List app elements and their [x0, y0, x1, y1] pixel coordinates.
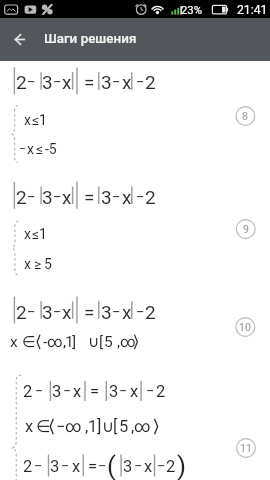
button[interactable]	[0, 18, 42, 60]
staticText: ≤	[32, 226, 40, 242]
staticText: x	[62, 301, 72, 323]
staticText: =	[84, 186, 95, 208]
staticText: −	[136, 73, 145, 91]
staticText: ∈	[22, 333, 36, 351]
staticText: −	[157, 458, 166, 475]
staticText: 3	[101, 186, 112, 208]
staticText: 2	[156, 382, 166, 401]
staticText: −	[134, 458, 143, 475]
staticText: −	[27, 303, 36, 321]
staticText: 2	[16, 186, 27, 208]
staticText: [	[99, 333, 104, 351]
button[interactable]: 10	[235, 317, 255, 337]
staticText: ≤	[32, 112, 40, 128]
staticText: x	[62, 71, 72, 93]
staticText: x	[73, 382, 82, 401]
staticText: −	[136, 188, 145, 206]
staticText: −	[112, 73, 121, 91]
staticText: 2	[16, 301, 27, 323]
staticText: x	[122, 186, 132, 208]
staticText: −	[119, 383, 128, 400]
staticText: ∞	[120, 333, 136, 351]
staticText: )	[177, 451, 187, 480]
staticText: −	[146, 383, 155, 400]
staticText: x	[130, 382, 139, 401]
staticText: (	[107, 451, 116, 480]
staticText: 1	[39, 112, 47, 128]
staticText: ∪	[88, 333, 100, 351]
staticText: x	[144, 457, 153, 476]
staticText: =	[88, 457, 98, 476]
staticText: -5	[45, 141, 57, 157]
staticText: 3	[123, 457, 133, 476]
staticText: x	[10, 333, 18, 351]
staticText: ,	[117, 333, 121, 351]
staticText: 3	[101, 71, 112, 93]
staticText: ,	[85, 417, 89, 436]
staticText: 2	[145, 186, 156, 208]
button[interactable]: 11	[236, 438, 256, 458]
button[interactable]: 8	[235, 106, 255, 126]
staticText: [	[113, 417, 118, 436]
staticText: 2	[16, 71, 27, 93]
staticText: 3	[42, 186, 53, 208]
staticText: 3	[42, 301, 53, 323]
staticText: 5	[119, 417, 129, 436]
staticText: 8	[242, 110, 248, 122]
staticText: ∪	[102, 417, 115, 436]
staticText: x	[27, 141, 34, 157]
staticText: x	[72, 457, 81, 476]
staticText: −	[136, 303, 145, 321]
staticText: ⟩	[153, 417, 159, 436]
staticText: −	[34, 458, 43, 475]
staticText: 1	[88, 417, 98, 436]
staticText: ≤	[36, 141, 44, 157]
staticText: 21:41	[237, 3, 268, 17]
staticText: 2	[23, 457, 33, 476]
staticText: −	[53, 303, 62, 321]
staticText: 2	[166, 457, 176, 476]
staticText: −	[56, 417, 66, 436]
staticText: ⟨	[49, 417, 55, 436]
staticText: 1	[39, 226, 47, 242]
staticText: 2	[145, 301, 156, 323]
staticText: −	[98, 458, 107, 475]
staticText: −	[63, 383, 72, 400]
staticText: −	[35, 383, 44, 400]
staticText: x	[122, 71, 132, 93]
staticText: =	[90, 382, 100, 401]
staticText: 3	[42, 71, 53, 93]
staticText: −	[112, 188, 121, 206]
staticText: 5	[44, 256, 52, 272]
staticText: 2	[23, 382, 33, 401]
staticText: 11	[240, 442, 252, 454]
button[interactable]: 9	[236, 219, 256, 239]
staticText: ]	[97, 417, 102, 436]
staticText: 10	[239, 321, 251, 333]
staticText: −	[19, 142, 26, 156]
staticText: −	[27, 73, 36, 91]
staticText: ⟨	[36, 333, 42, 351]
staticText: −	[53, 73, 62, 91]
staticText: 3	[101, 301, 112, 323]
staticText: ∞	[47, 333, 63, 351]
staticText: 9	[243, 223, 249, 235]
staticText: ,	[131, 417, 135, 436]
staticText: x	[62, 186, 72, 208]
staticText: -	[43, 333, 48, 351]
staticText: 5	[104, 333, 113, 351]
staticText: 23%	[181, 4, 202, 17]
staticText: x	[24, 112, 31, 128]
staticText: −	[27, 188, 36, 206]
staticText: −	[53, 188, 62, 206]
staticText: 3	[52, 382, 62, 401]
staticText: ,	[63, 333, 67, 351]
staticText: ∈	[36, 417, 51, 436]
staticText: ∞	[65, 417, 82, 436]
staticText: =	[84, 71, 95, 93]
staticText: x	[24, 256, 31, 272]
staticText: ]	[72, 333, 77, 351]
staticText: 1	[65, 333, 74, 351]
staticText: x	[122, 301, 132, 323]
staticText: −	[112, 303, 121, 321]
